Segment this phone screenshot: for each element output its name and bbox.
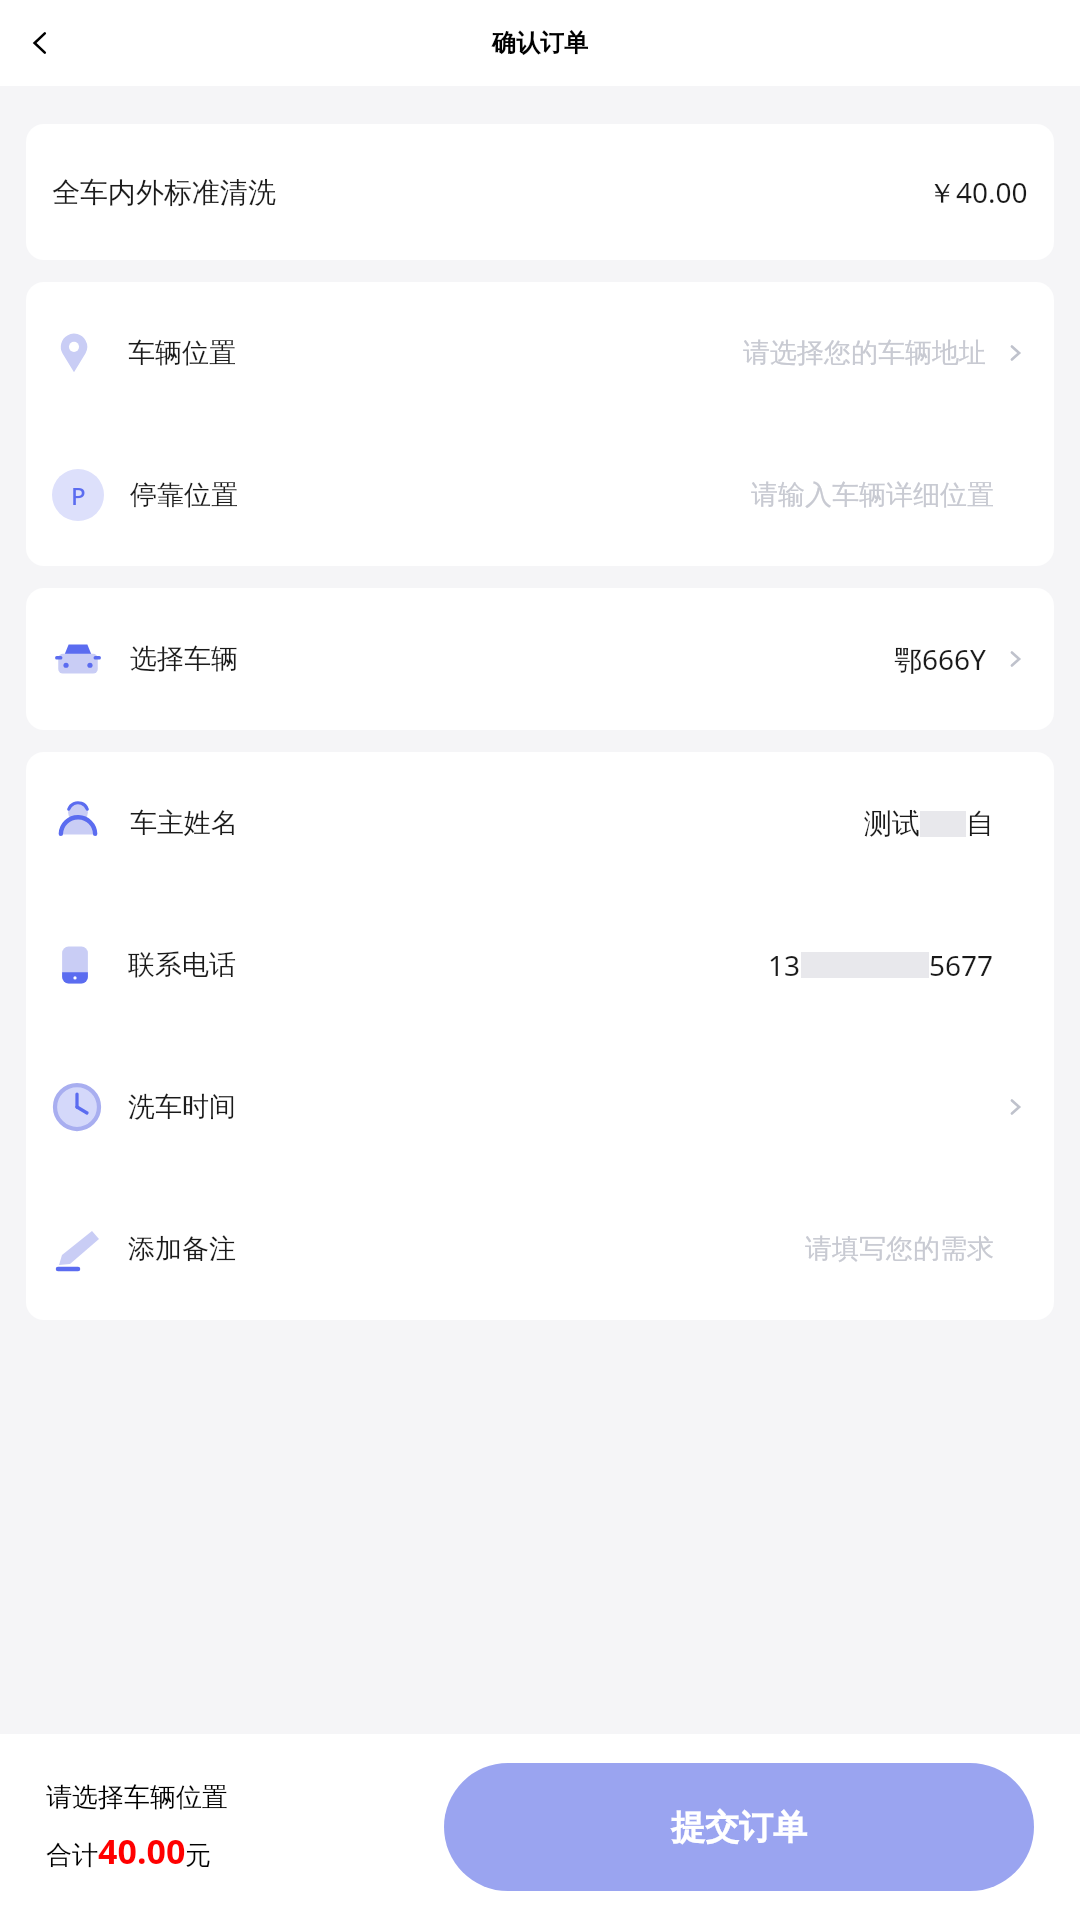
- staticText: 车辆位置: [128, 336, 236, 370]
- staticText: 停靠位置: [130, 478, 238, 512]
- staticText: 请输入车辆详细位置: [751, 478, 994, 512]
- staticText: 确认订单: [492, 28, 588, 58]
- staticText: ￥40.00: [928, 173, 1028, 211]
- staticText: 请选择车辆位置: [46, 1781, 228, 1814]
- staticText: 合计40.00元: [46, 1828, 212, 1874]
- staticText: 选择车辆: [130, 642, 238, 676]
- staticText: 5677: [929, 946, 994, 984]
- button[interactable]: 洗车时间: [26, 1036, 1054, 1178]
- staticText: 联系电话: [128, 948, 236, 982]
- staticText: 全车内外标准清洗: [52, 175, 276, 210]
- button[interactable]: 车辆位置: [26, 282, 1054, 424]
- staticText: 洗车时间: [128, 1090, 236, 1124]
- staticText: 车主姓名: [130, 806, 238, 840]
- button[interactable]: Back: [8, 11, 72, 75]
- staticText: 鄂666Y: [894, 640, 986, 678]
- staticText: 测试: [864, 806, 920, 841]
- button[interactable]: 添加备注: [26, 1178, 1054, 1320]
- staticText: 请填写您的需求: [805, 1232, 994, 1266]
- staticText: 自: [966, 806, 994, 841]
- button[interactable]: P: [26, 424, 1054, 566]
- button[interactable]: 车主姓名: [26, 752, 1054, 894]
- staticText: 请选择您的车辆地址: [743, 336, 986, 370]
- button[interactable]: 选择车辆: [26, 588, 1054, 730]
- staticText: 添加备注: [128, 1232, 236, 1266]
- button[interactable]: 提交订单: [444, 1763, 1034, 1891]
- button[interactable]: 联系电话: [26, 894, 1054, 1036]
- staticText: P: [71, 479, 86, 512]
- button[interactable]: 全车内外标准清洗: [26, 124, 1054, 260]
- staticText: 13: [768, 946, 801, 984]
- staticText: 提交订单: [671, 1806, 807, 1849]
